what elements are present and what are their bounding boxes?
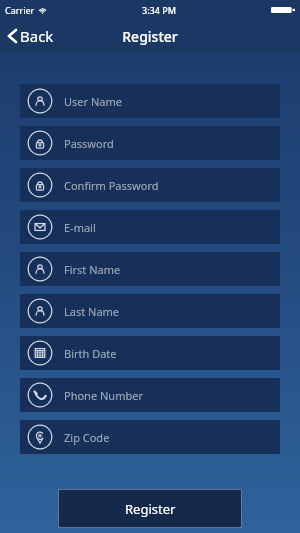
staticText: Register: [125, 500, 176, 518]
button[interactable]: Phone Number: [20, 378, 280, 412]
staticText: First Name: [64, 262, 121, 277]
staticText: Birth Date: [64, 346, 117, 361]
staticText: E-mail: [64, 220, 96, 235]
button[interactable]: Register: [58, 489, 242, 528]
staticText: Password: [64, 136, 114, 151]
staticText: Phone Number: [64, 388, 143, 403]
staticText: User Name: [64, 94, 122, 109]
staticText: Back: [20, 26, 54, 46]
staticText: Last Name: [64, 304, 120, 319]
button[interactable]: Last Name: [20, 294, 280, 328]
button[interactable]: E-mail: [20, 210, 280, 244]
button[interactable]: Password: [20, 126, 280, 160]
staticText: Confirm Password: [64, 178, 159, 193]
staticText: Zip Code: [64, 430, 110, 445]
button[interactable]: User Name: [20, 84, 280, 118]
button[interactable]: Birth Date: [20, 336, 280, 370]
staticText: 3:34 PM: [142, 4, 176, 16]
staticText: Carrier: [5, 4, 35, 16]
button[interactable]: First Name: [20, 252, 280, 286]
staticText: Register: [122, 27, 178, 46]
button[interactable]: Back: [0, 20, 62, 52]
button[interactable]: Zip Code: [20, 420, 280, 454]
button[interactable]: Confirm Password: [20, 168, 280, 202]
